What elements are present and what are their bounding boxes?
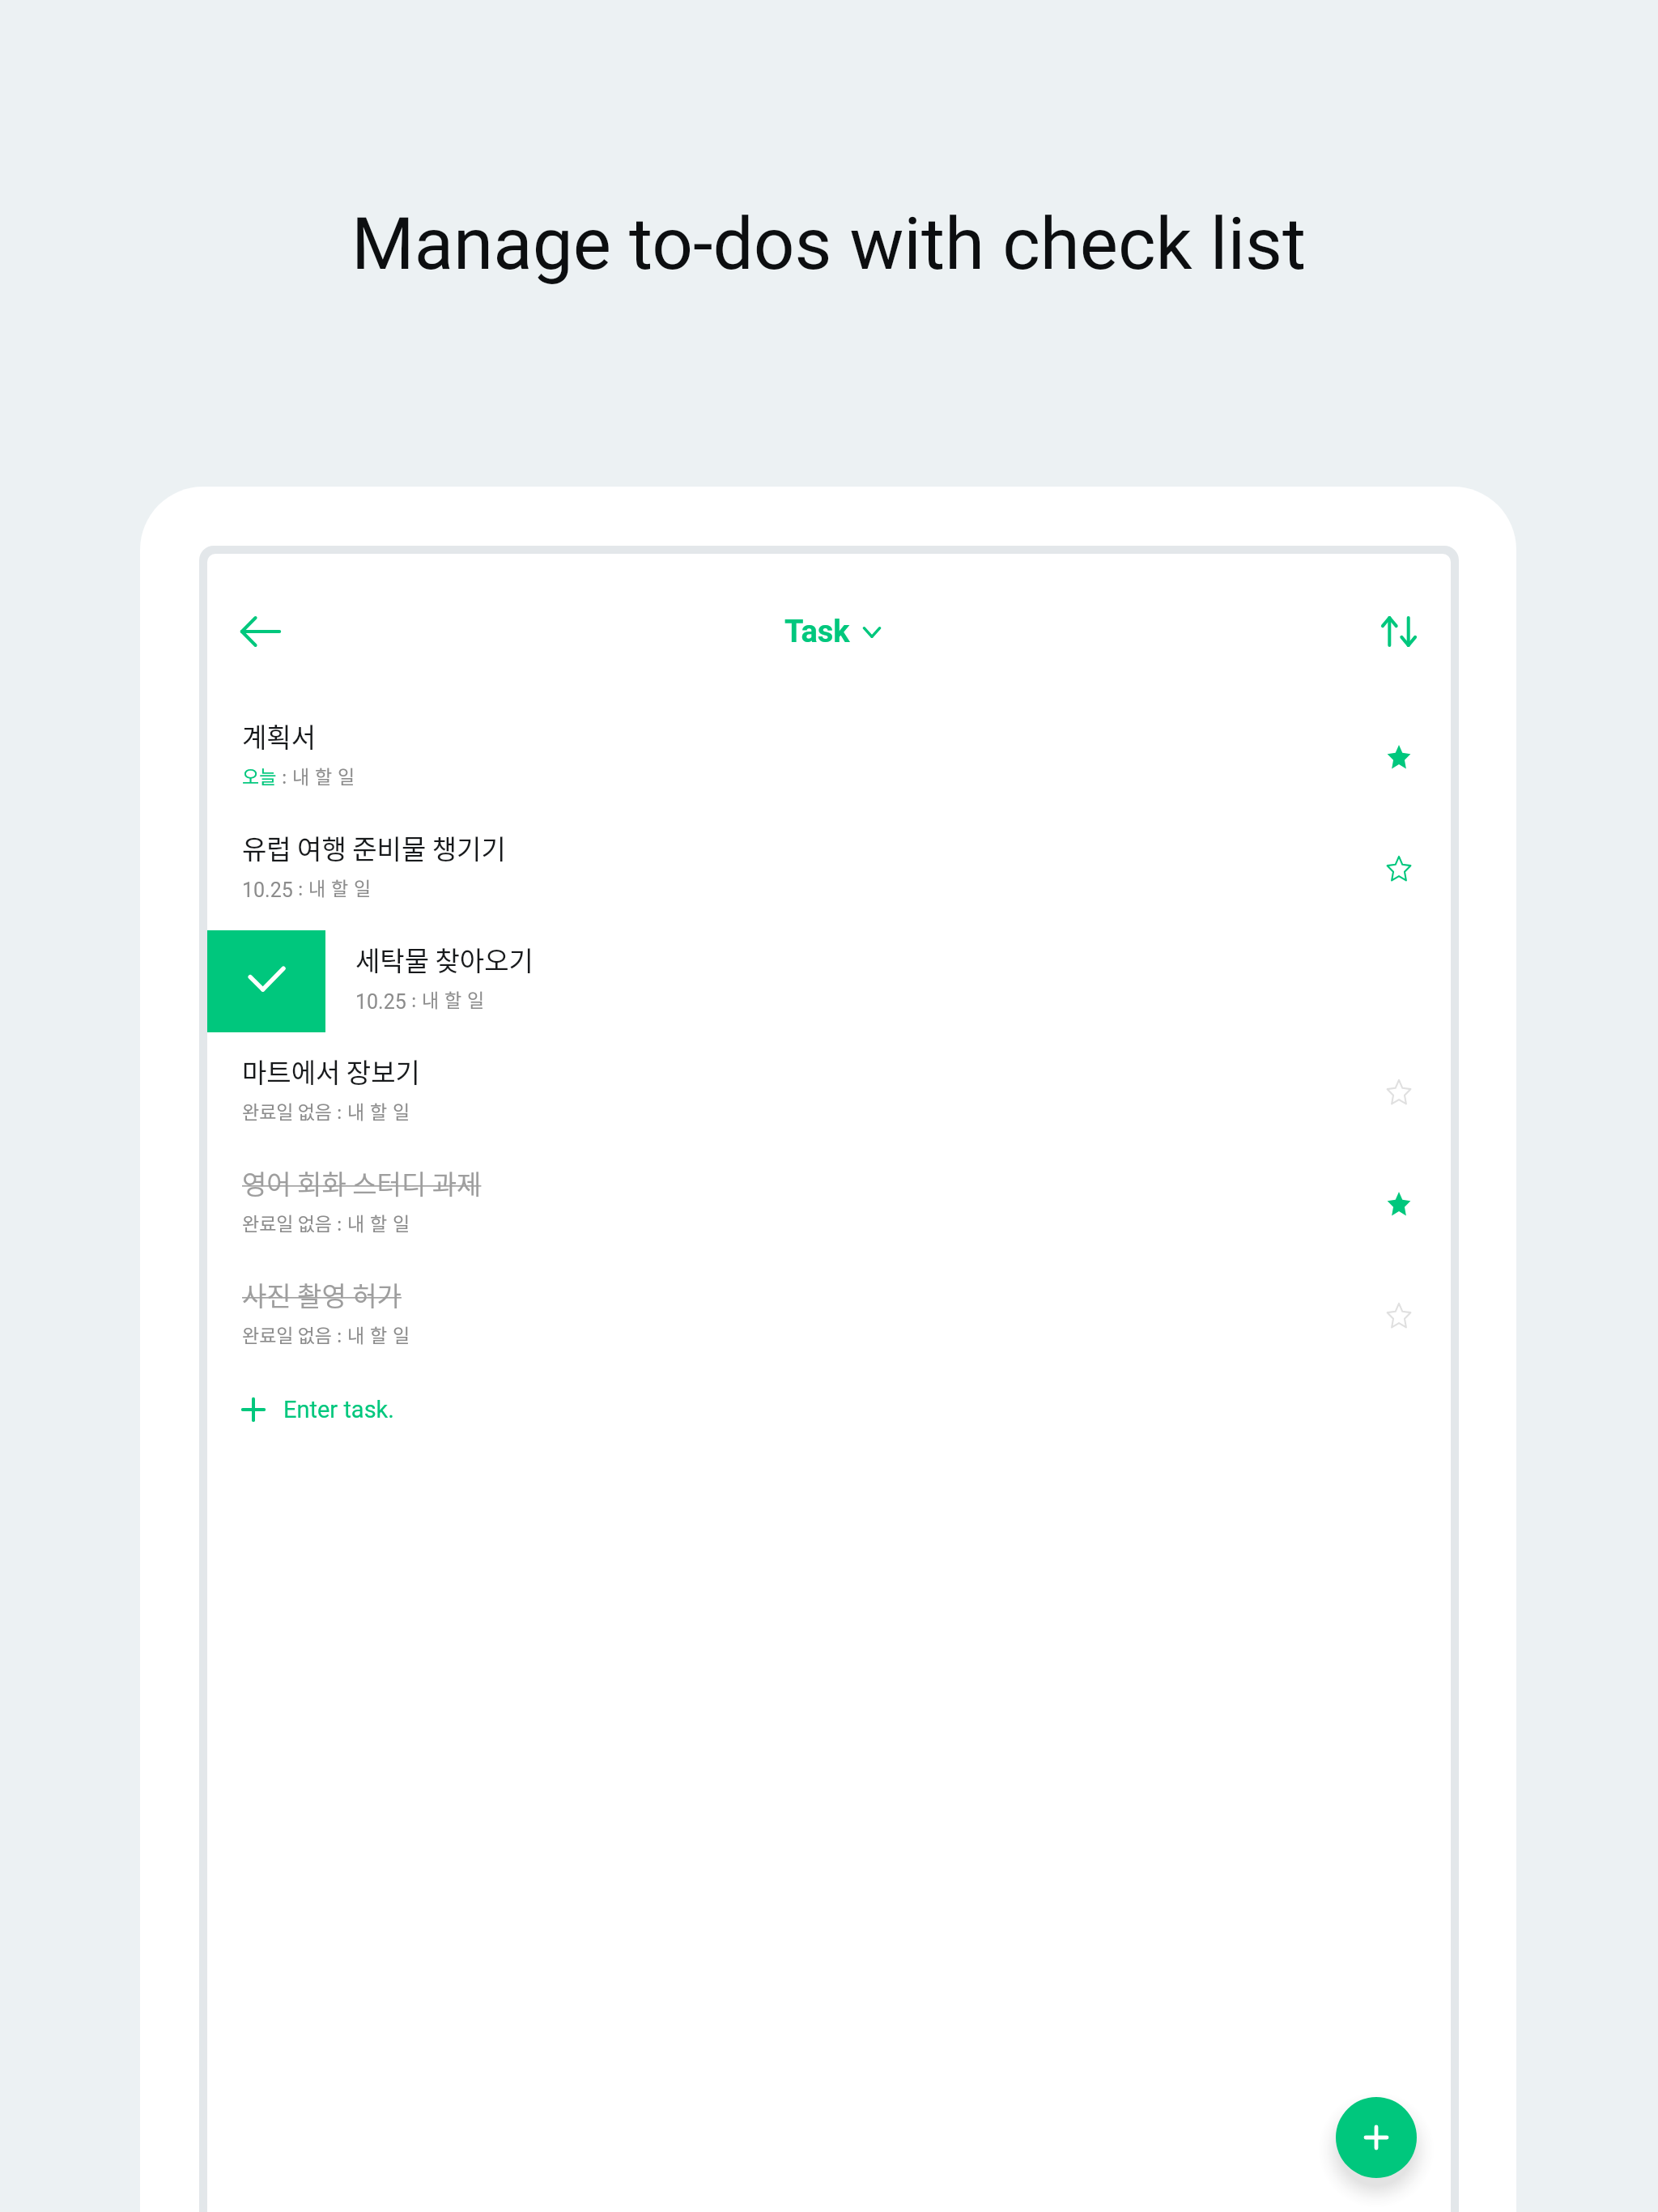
button[interactable]: 계획서 xyxy=(207,702,1451,814)
staticText: 완료일 없음 xyxy=(242,1097,332,1124)
staticText: : 내 할 일 xyxy=(293,874,372,900)
button[interactable]: Unstar xyxy=(1350,709,1448,806)
button[interactable]: Task xyxy=(784,593,882,670)
button[interactable]: 유럽 여행 준비물 챙기기 xyxy=(207,814,1451,925)
staticText: Task xyxy=(784,614,850,650)
staticText: 영어 회화 스터디 과제 xyxy=(242,1163,482,1202)
button[interactable]: 마트에서 장보기 xyxy=(207,1037,1451,1149)
staticText: : 내 할 일 xyxy=(406,985,485,1012)
staticText: 유럽 여행 준비물 챙기기 xyxy=(242,828,506,867)
button[interactable]: 사진 촬영 허가 xyxy=(207,1261,1451,1372)
staticText: 오늘 xyxy=(242,762,277,789)
button[interactable]: Back xyxy=(217,588,304,675)
button[interactable]: Add task xyxy=(1336,2097,1417,2178)
button[interactable]: Star xyxy=(1350,821,1448,918)
button[interactable]: Mark as not done xyxy=(207,925,1451,1037)
button[interactable]: Mark as not done xyxy=(207,930,325,1032)
staticText: : 내 할 일 xyxy=(332,1209,410,1236)
staticText: : 내 할 일 xyxy=(332,1321,410,1347)
button[interactable]: Unstar xyxy=(1350,1156,1448,1253)
staticText: : 내 할 일 xyxy=(332,1097,410,1124)
staticText: Manage to-dos with check list xyxy=(351,202,1307,286)
staticText: 완료일 없음 xyxy=(242,1209,332,1236)
button[interactable]: 영어 회화 스터디 과제 xyxy=(207,1149,1451,1261)
button[interactable]: Enter task. xyxy=(207,1365,1451,1454)
button[interactable]: Star xyxy=(1350,1044,1448,1142)
staticText: 완료일 없음 xyxy=(242,1321,332,1347)
button[interactable]: Star xyxy=(1350,1268,1448,1365)
staticText: : 내 할 일 xyxy=(277,762,355,789)
button[interactable]: Sort xyxy=(1355,588,1443,675)
staticText: 사진 촬영 허가 xyxy=(242,1275,402,1314)
staticText: 10.25 xyxy=(242,878,293,902)
staticText: 10.25 xyxy=(355,990,406,1014)
staticText: 세탁물 찾아오기 xyxy=(355,940,534,979)
staticText: 마트에서 장보기 xyxy=(242,1052,420,1091)
staticText: Enter task. xyxy=(283,1396,394,1423)
staticText: 계획서 xyxy=(242,717,317,755)
